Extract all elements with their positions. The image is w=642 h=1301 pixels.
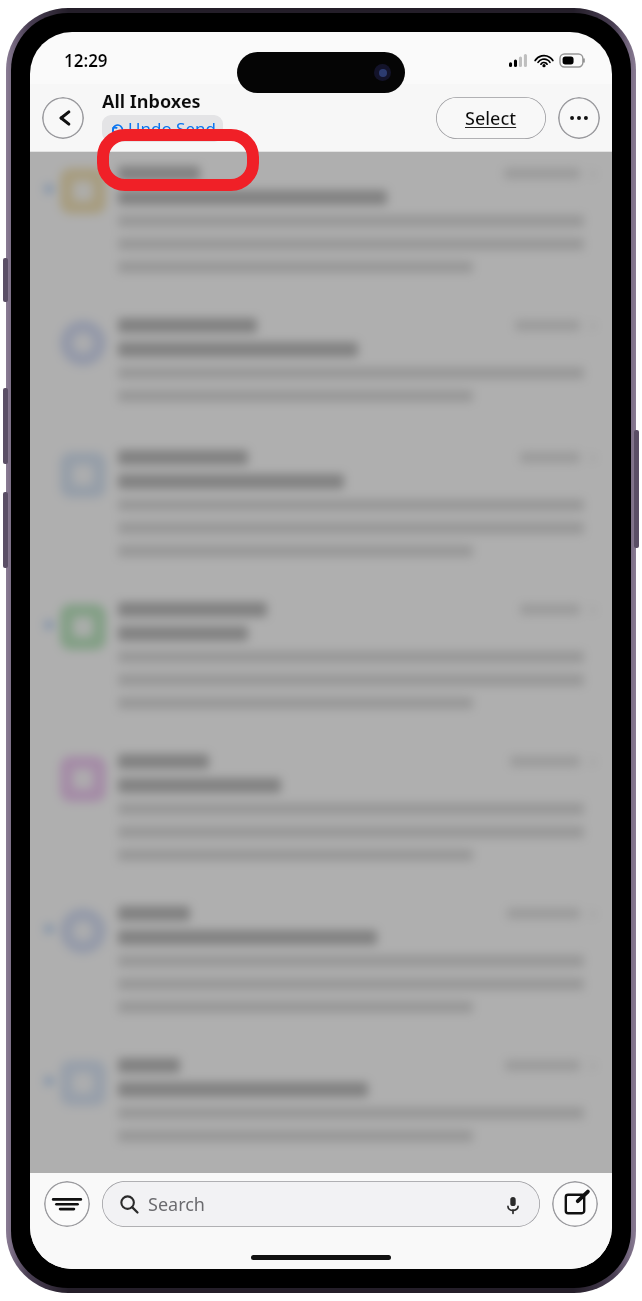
button[interactable] [30, 892, 612, 1044]
button[interactable]: Search [102, 1181, 540, 1227]
staticText: Search [148, 1192, 205, 1217]
button[interactable]: Undo Send [102, 115, 223, 142]
button[interactable]: Compose [552, 1181, 598, 1227]
staticText: 12:29 [64, 49, 108, 72]
button[interactable] [30, 588, 612, 740]
button[interactable] [30, 304, 612, 436]
button[interactable]: Select [436, 97, 546, 139]
button[interactable] [30, 740, 612, 892]
button[interactable] [30, 1044, 612, 1173]
staticText: Undo Send [128, 117, 216, 140]
button[interactable]: More options [558, 97, 600, 139]
button[interactable] [30, 436, 612, 588]
button[interactable] [30, 152, 612, 304]
staticText: Select [465, 106, 517, 131]
button[interactable]: Back [42, 97, 84, 139]
button[interactable]: Filter [44, 1181, 90, 1227]
staticText: All Inboxes [102, 89, 201, 114]
